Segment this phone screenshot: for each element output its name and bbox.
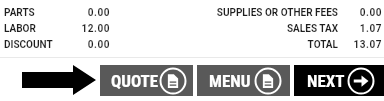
staticText: SUPPLIES OR OTHER FEES <box>198 7 338 19</box>
staticText: 12.00 <box>66 23 110 35</box>
other: Proceed <box>22 65 96 95</box>
staticText: PARTS <box>4 7 66 19</box>
staticText: 0.00 <box>66 39 110 51</box>
button[interactable]: QUOTE <box>100 65 193 96</box>
staticText: DISCOUNT <box>4 39 66 51</box>
staticText: 0.00 <box>66 7 110 19</box>
staticText: QUOTE <box>111 71 159 91</box>
button[interactable]: NEXT <box>294 65 384 96</box>
staticText: SALES TAX <box>198 23 338 35</box>
staticText: NEXT <box>307 71 345 91</box>
button[interactable]: MENU <box>197 65 290 96</box>
staticText: 0.00 <box>338 7 382 19</box>
staticText: LABOR <box>4 23 66 35</box>
staticText: 1.07 <box>338 23 382 35</box>
staticText: 13.07 <box>338 39 382 51</box>
staticText: MENU <box>209 71 251 91</box>
staticText: TOTAL <box>198 39 338 51</box>
